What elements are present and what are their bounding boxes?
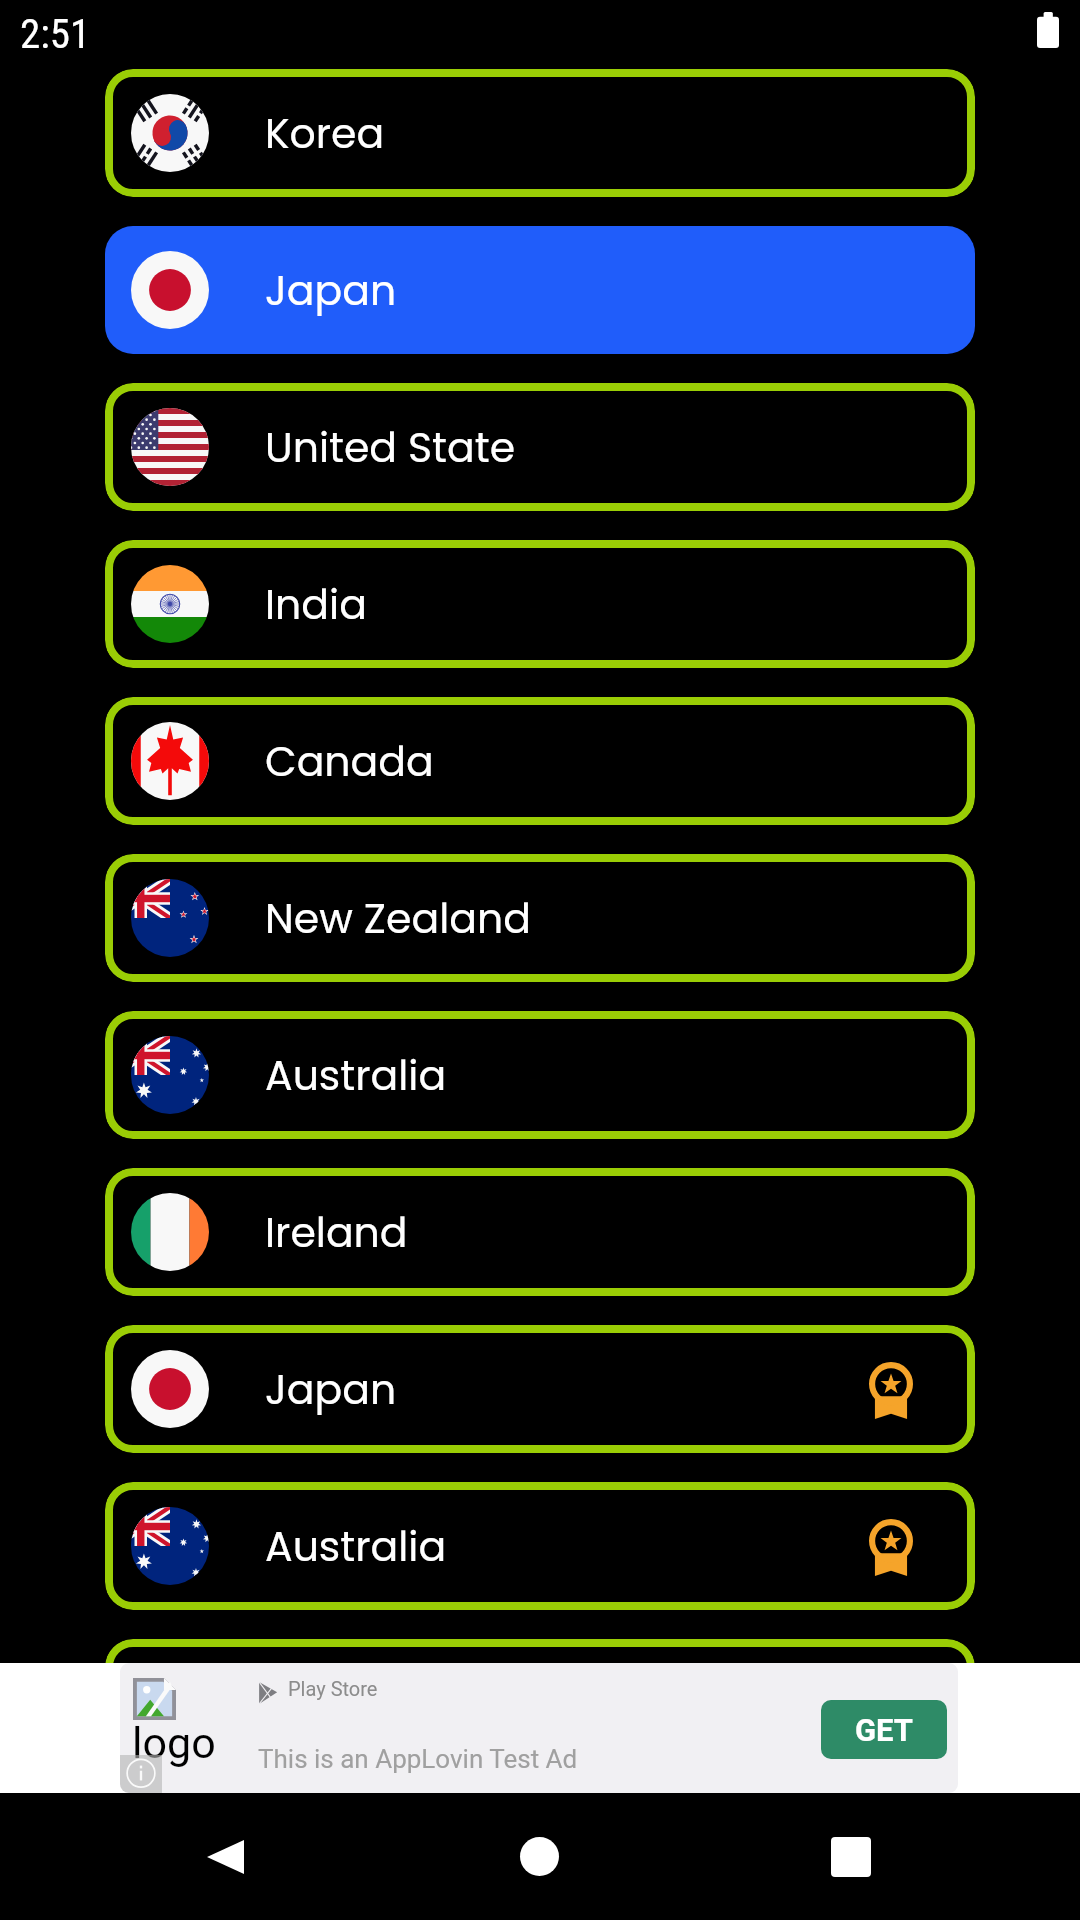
- button[interactable]: India: [105, 540, 975, 668]
- staticText: Ireland: [265, 1204, 408, 1261]
- button[interactable]: Ireland: [105, 1168, 975, 1296]
- staticText: Play Store: [288, 1677, 378, 1700]
- staticText: Australia: [265, 1518, 447, 1575]
- staticText: GET: [855, 1712, 914, 1748]
- button[interactable]: Korea: [105, 69, 975, 197]
- button[interactable]: logo: [120, 1663, 958, 1793]
- staticText: Japan: [265, 1361, 397, 1418]
- button[interactable]: Back: [165, 1793, 286, 1920]
- button[interactable]: GET: [821, 1700, 947, 1759]
- staticText: Japan: [265, 262, 397, 319]
- button[interactable]: Recent apps: [791, 1793, 912, 1920]
- staticText: Korea: [265, 1675, 385, 1732]
- button[interactable]: Home: [479, 1793, 600, 1920]
- staticText: New Zealand: [265, 890, 531, 947]
- staticText: Korea: [265, 105, 385, 162]
- staticText: India: [265, 576, 367, 633]
- button[interactable]: Japan: [105, 1325, 975, 1453]
- button[interactable]: United State: [105, 383, 975, 511]
- staticText: 2:51: [20, 10, 91, 58]
- staticText: United State: [265, 419, 516, 476]
- staticText: logo: [132, 1718, 216, 1768]
- button[interactable]: Australia: [105, 1482, 975, 1610]
- staticText: This is an AppLovin Test Ad: [258, 1744, 578, 1774]
- button[interactable]: Japan: [105, 226, 975, 354]
- button[interactable]: Korea: [105, 1639, 975, 1767]
- staticText: Australia: [265, 1047, 447, 1104]
- button[interactable]: New Zealand: [105, 854, 975, 982]
- staticText: Canada: [265, 733, 434, 790]
- button[interactable]: Australia: [105, 1011, 975, 1139]
- other: Award: [869, 1519, 913, 1576]
- other: Award: [869, 1362, 913, 1419]
- button[interactable]: Canada: [105, 697, 975, 825]
